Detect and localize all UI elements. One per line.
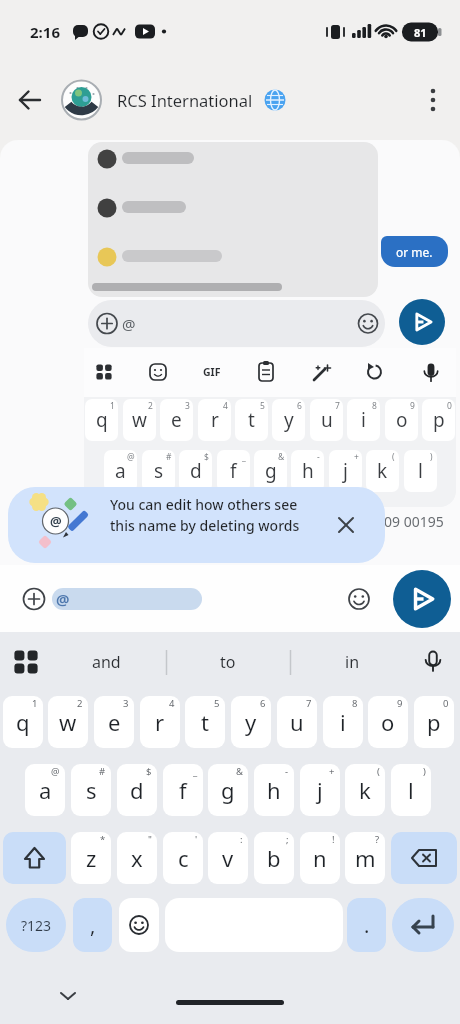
button[interactable] xyxy=(6,644,46,680)
button[interactable]: l xyxy=(391,764,431,816)
button[interactable]: t xyxy=(235,399,268,441)
button[interactable]: t xyxy=(185,696,225,748)
staticText: 0 xyxy=(443,697,449,710)
staticText: u xyxy=(321,407,333,433)
staticText: r xyxy=(211,407,219,433)
button[interactable]: p xyxy=(422,399,455,441)
staticText: w xyxy=(132,407,147,433)
button[interactable]: w xyxy=(48,696,88,748)
staticText: 9 xyxy=(410,400,415,411)
staticText: " xyxy=(148,833,152,846)
button[interactable]: u xyxy=(277,696,317,748)
button[interactable]: and xyxy=(60,641,152,683)
button[interactable]: s xyxy=(71,764,111,816)
staticText: + xyxy=(329,765,335,778)
button[interactable]: e xyxy=(160,399,193,441)
button[interactable]: n xyxy=(300,832,340,884)
button[interactable]: b xyxy=(254,832,294,884)
button[interactable] xyxy=(413,79,455,121)
button[interactable]: r xyxy=(198,399,231,441)
staticText: r xyxy=(155,707,165,737)
button[interactable]: d xyxy=(179,450,212,492)
button[interactable]: u xyxy=(310,399,343,441)
staticText: @ xyxy=(122,314,136,334)
button[interactable]: q xyxy=(3,696,43,748)
staticText: 1 xyxy=(32,697,38,710)
staticText: z xyxy=(86,843,97,873)
button[interactable]: q xyxy=(85,399,118,441)
button[interactable]: to xyxy=(182,641,274,683)
staticText: t xyxy=(248,407,255,433)
staticText: p xyxy=(433,407,445,433)
button[interactable]: g xyxy=(208,764,248,816)
button[interactable]: x xyxy=(117,832,157,884)
staticText: v xyxy=(222,843,234,873)
button[interactable]: h xyxy=(291,450,324,492)
button[interactable] xyxy=(8,79,50,121)
button[interactable]: e xyxy=(94,696,134,748)
staticText: ? xyxy=(375,833,380,846)
button[interactable]: j xyxy=(329,450,362,492)
staticText: $ xyxy=(204,451,209,462)
button[interactable]: in xyxy=(306,641,398,683)
staticText: 5 xyxy=(260,400,265,411)
button[interactable]: a xyxy=(104,450,137,492)
button[interactable]: o xyxy=(368,696,408,748)
button[interactable]: p xyxy=(414,696,454,748)
button[interactable]: ?123 xyxy=(6,898,66,952)
button[interactable]: a xyxy=(25,764,65,816)
button[interactable]: d xyxy=(117,764,157,816)
staticText: @ xyxy=(50,512,62,530)
button[interactable]: r xyxy=(140,696,180,748)
button[interactable] xyxy=(391,832,457,884)
staticText: 8 xyxy=(352,697,358,710)
button[interactable] xyxy=(50,980,86,1010)
button[interactable]: v xyxy=(208,832,248,884)
staticText: m xyxy=(355,843,376,873)
button[interactable]: g xyxy=(254,450,287,492)
button[interactable]: o xyxy=(385,399,418,441)
staticText: y xyxy=(284,407,294,433)
staticText: f xyxy=(230,458,237,484)
staticText: t xyxy=(201,707,209,737)
staticText: l xyxy=(408,775,414,805)
button[interactable]: f xyxy=(217,450,250,492)
button[interactable] xyxy=(119,898,159,952)
staticText: _ xyxy=(193,765,198,778)
button[interactable]: h xyxy=(254,764,294,816)
button[interactable] xyxy=(413,642,453,682)
staticText: @ xyxy=(51,765,60,778)
button[interactable] xyxy=(399,299,445,345)
staticText: _ xyxy=(242,451,246,462)
button[interactable]: c xyxy=(163,832,203,884)
button[interactable]: i xyxy=(323,696,363,748)
button[interactable]: s xyxy=(142,450,175,492)
staticText: You can edit how others see xyxy=(110,495,298,514)
staticText: 6 xyxy=(297,400,302,411)
button[interactable]: l xyxy=(404,450,437,492)
staticText: g xyxy=(221,775,235,805)
staticText: h xyxy=(302,458,314,484)
staticText: n xyxy=(313,843,327,873)
button[interactable]: j xyxy=(300,764,340,816)
button[interactable]: z xyxy=(71,832,111,884)
button[interactable] xyxy=(393,570,451,628)
button[interactable]: k xyxy=(366,450,399,492)
button[interactable]: . xyxy=(347,898,386,952)
button[interactable]: f xyxy=(163,764,203,816)
staticText: ; xyxy=(286,833,289,846)
button[interactable]: k xyxy=(345,764,385,816)
button[interactable]: y xyxy=(272,399,305,441)
button[interactable]: y xyxy=(231,696,271,748)
button[interactable] xyxy=(3,832,66,884)
button[interactable]: i xyxy=(347,399,380,441)
button[interactable] xyxy=(392,898,454,952)
button[interactable]: , xyxy=(73,898,112,952)
button[interactable]: w xyxy=(123,399,156,441)
button[interactable]: m xyxy=(345,832,385,884)
button[interactable] xyxy=(8,487,385,563)
button[interactable]: RCS International xyxy=(58,76,298,124)
staticText: - xyxy=(285,765,289,778)
staticText: a xyxy=(115,458,126,484)
